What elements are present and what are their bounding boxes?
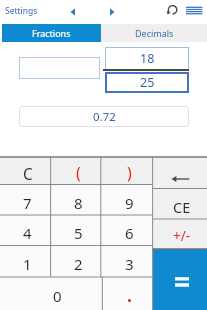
button[interactable] <box>19 57 100 79</box>
staticText: 1 <box>23 254 32 274</box>
button[interactable]: Fractions <box>2 24 101 42</box>
staticText: 7 <box>23 193 32 213</box>
button[interactable] <box>65 3 81 21</box>
button[interactable]: 25 <box>105 72 189 93</box>
staticText: Decimals <box>135 27 174 39</box>
button[interactable] <box>153 249 207 310</box>
staticText: C <box>23 163 33 184</box>
button[interactable] <box>184 2 204 20</box>
button[interactable]: 18 <box>105 47 189 70</box>
staticText: 18 <box>140 50 155 67</box>
button[interactable]: CE <box>153 189 207 220</box>
button[interactable]: 8 <box>51 185 101 216</box>
button[interactable]: 0 <box>0 277 102 310</box>
button[interactable]: Decimals <box>101 24 207 42</box>
button[interactable]: 5 <box>51 215 101 246</box>
staticText: 0.72 <box>93 109 116 125</box>
staticText: 2 <box>74 254 83 274</box>
button[interactable]: 0.72 <box>19 106 189 127</box>
staticText: 4 <box>23 223 32 243</box>
button[interactable] <box>105 3 121 21</box>
button[interactable]: ) <box>101 157 153 185</box>
button[interactable]: 2 <box>51 246 101 278</box>
button[interactable]: +/- <box>153 219 207 249</box>
staticText: ) <box>127 162 132 184</box>
button[interactable]: ( <box>51 157 101 185</box>
staticText: Settings <box>5 5 38 17</box>
staticText: 3 <box>125 254 134 274</box>
staticText: 8 <box>74 193 83 213</box>
staticText: 9 <box>125 193 134 213</box>
button[interactable] <box>153 157 207 189</box>
button[interactable]: C <box>0 157 51 185</box>
staticText: CE <box>173 197 191 217</box>
button[interactable] <box>102 277 152 310</box>
staticText: 6 <box>125 223 134 243</box>
button[interactable]: 7 <box>0 185 51 216</box>
button[interactable] <box>164 2 182 20</box>
button[interactable]: 6 <box>101 215 153 246</box>
staticText: 25 <box>140 74 155 91</box>
button[interactable]: 1 <box>0 246 51 278</box>
staticText: Fractions <box>32 27 71 39</box>
staticText: 0 <box>53 286 62 306</box>
button[interactable]: 3 <box>101 246 153 278</box>
button[interactable]: Settings <box>3 2 55 20</box>
staticText: ( <box>76 162 81 184</box>
button[interactable]: 9 <box>101 185 153 216</box>
button[interactable]: 4 <box>0 215 51 246</box>
staticText: 5 <box>74 223 83 243</box>
staticText: +/- <box>173 227 191 245</box>
